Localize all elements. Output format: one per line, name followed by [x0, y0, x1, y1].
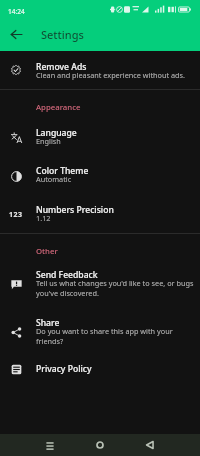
staticText: Numbers Precision [36, 204, 114, 216]
staticText: Appearance [36, 102, 81, 113]
button[interactable]: 123 [0, 195, 200, 233]
button[interactable]: Home [75, 434, 125, 456]
button[interactable]: Back [6, 24, 26, 44]
staticText: Other [36, 246, 58, 257]
button[interactable]: Color Theme [0, 156, 200, 195]
staticText: Do you want to share this app with your … [36, 326, 194, 346]
staticText: Send Feedback [36, 269, 98, 281]
staticText: Language [36, 127, 77, 139]
button[interactable]: Recents [25, 434, 75, 456]
button[interactable]: Share [0, 308, 200, 356]
staticText: Automatic [36, 174, 72, 184]
staticText: English [36, 136, 61, 146]
button[interactable]: Remove Ads [0, 51, 200, 89]
staticText: 1.12 [36, 213, 51, 223]
staticText: Privacy Policy [36, 363, 92, 375]
staticText: Clean and pleasant experience without ad… [36, 70, 186, 80]
staticText: Remove Ads [36, 61, 87, 73]
button[interactable]: Send Feedback [0, 260, 200, 308]
staticText: 14:24 [8, 7, 25, 16]
staticText: 123 [9, 210, 23, 220]
staticText: Color Theme [36, 165, 89, 177]
staticText: Tell us what changes you'd like to see, … [36, 278, 194, 298]
staticText: Share [36, 317, 60, 329]
button[interactable]: Back [125, 434, 175, 456]
button[interactable]: Language [0, 118, 200, 156]
button[interactable]: Privacy Policy [0, 356, 200, 381]
staticText: Settings [41, 27, 84, 42]
